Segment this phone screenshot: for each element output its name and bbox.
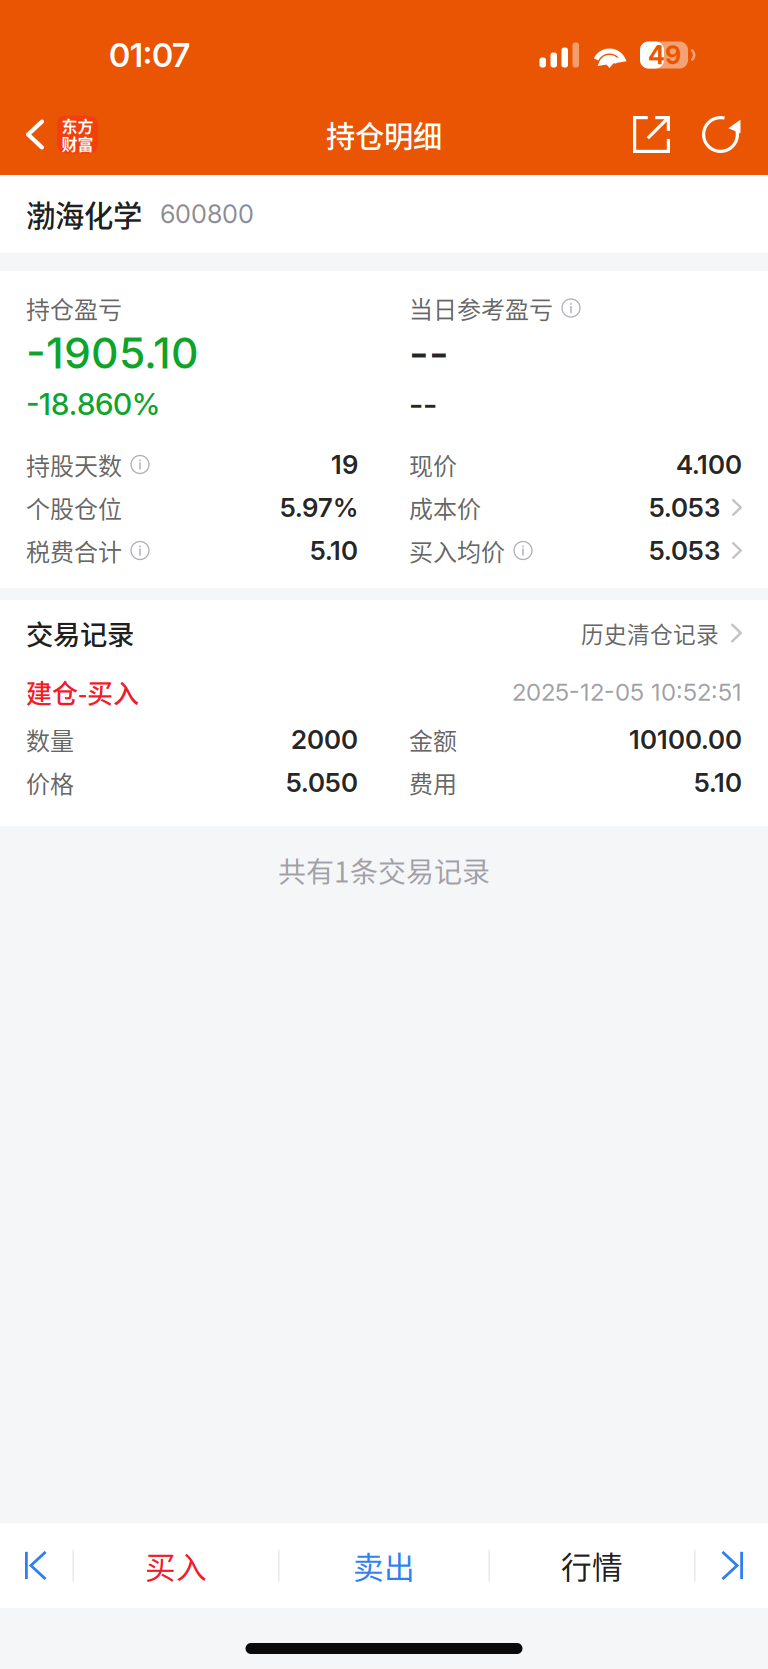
- staticText: 当日参考盈亏: [409, 291, 553, 325]
- staticText: 5.10: [310, 535, 358, 566]
- button[interactable]: 行情: [490, 1523, 694, 1608]
- staticText: 持仓盈亏: [26, 291, 122, 325]
- staticText: 19: [331, 449, 358, 480]
- staticText: 5.053: [649, 535, 720, 566]
- staticText: 2000: [291, 724, 358, 755]
- staticText: 现价: [409, 447, 457, 482]
- button[interactable]: 下一只 Next: [695, 1523, 768, 1608]
- staticText: 2025-12-05 10:52:51: [512, 677, 742, 706]
- staticText: 价格: [26, 765, 74, 800]
- button[interactable]: 分享 Share: [619, 105, 684, 164]
- staticText: 持股天数: [26, 447, 122, 482]
- staticText: 5.10: [694, 767, 742, 798]
- staticText: 东方: [61, 114, 93, 137]
- button[interactable]: 上一只 Previous: [0, 1523, 72, 1608]
- staticText: 历史清仓记录: [581, 617, 719, 649]
- staticText: 5.053: [649, 492, 720, 523]
- staticText: 5.97%: [280, 492, 358, 523]
- staticText: 持仓明细: [326, 113, 442, 156]
- button[interactable]: 刷新 Refresh: [684, 105, 747, 164]
- staticText: -18.860%: [26, 386, 160, 422]
- staticText: -1905.10: [26, 327, 199, 379]
- staticText: 买入均价: [409, 533, 505, 568]
- button[interactable]: 历史清仓记录: [581, 607, 742, 659]
- staticText: 600800: [160, 199, 254, 229]
- staticText: 4.100: [676, 449, 742, 480]
- staticText: 金额: [409, 722, 457, 757]
- button[interactable]: 买入: [74, 1523, 278, 1608]
- staticText: --: [409, 327, 449, 379]
- staticText: 财富: [61, 132, 93, 155]
- staticText: 01:07: [109, 35, 190, 75]
- staticText: 买入: [145, 1543, 207, 1588]
- staticText: 个股仓位: [26, 490, 122, 525]
- button[interactable]: 卖出: [279, 1523, 488, 1608]
- staticText: 10100.00: [629, 724, 742, 755]
- staticText: 税费合计: [26, 533, 122, 568]
- staticText: --: [409, 385, 437, 423]
- staticText: 49: [648, 40, 681, 70]
- staticText: 行情: [561, 1543, 623, 1588]
- staticText: 成本价: [409, 490, 481, 525]
- staticText: 交易记录: [26, 613, 134, 653]
- staticText: 建仓-买入: [26, 673, 139, 711]
- staticText: 共有1条交易记录: [278, 850, 490, 890]
- staticText: 渤海化学: [26, 193, 142, 235]
- staticText: 卖出: [353, 1543, 415, 1588]
- button[interactable]: 返回 Back: [0, 105, 112, 163]
- staticText: 费用: [409, 765, 457, 800]
- staticText: 5.050: [286, 767, 358, 798]
- staticText: 数量: [26, 722, 74, 757]
